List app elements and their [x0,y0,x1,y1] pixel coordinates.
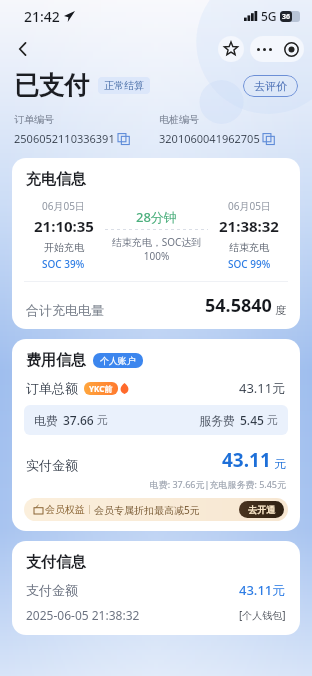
staticText: 服务费 [199,413,235,428]
staticText: 54.5840 [205,293,272,318]
staticText: 支付金额 [26,582,78,598]
staticText: 21:42 [24,7,60,26]
staticText: SOC 99% [228,257,271,271]
staticText: [个人钱包] [239,608,286,622]
button[interactable]: Record [278,36,304,62]
staticText: 43.11元 [239,581,286,599]
staticText: 个人账户 [100,355,136,366]
staticText: 实付金额 [26,457,78,473]
staticText: 43.11元 [239,379,286,397]
button[interactable]: Copy [263,133,275,145]
staticText: 5.45 [240,412,264,428]
staticText: 费用信息 [26,351,86,370]
staticText: 充电信息 [26,170,86,189]
button[interactable]: 去评价 [243,75,298,97]
staticText: 5G [261,8,277,24]
staticText: 电费 [34,413,58,428]
staticText: 结束充电 [229,241,269,254]
staticText: 36 [282,12,291,22]
staticText: 06月05日 [42,199,85,213]
staticText: 43.11 [222,447,271,473]
button[interactable]: Copy [118,133,130,145]
staticText: 订单总额 [26,380,78,396]
button[interactable]: Back [8,34,38,64]
staticText: 订单编号 [14,113,54,126]
button[interactable]: More options [250,36,278,62]
staticText: 2506052110336391 [14,131,115,146]
staticText: 电费: 37.66元|充电服务费: 5.45元 [12,478,286,490]
staticText: SOC 39% [42,257,85,271]
staticText: 支付信息 [26,553,86,572]
staticText: 开始充电 [44,241,84,254]
staticText: YKC前 [89,383,113,394]
staticText: 会员权益 [45,503,85,516]
staticText: 元 [274,456,286,471]
staticText: 正常结算 [104,79,144,92]
staticText: 已支付 [14,70,89,101]
staticText: 28分钟 [136,208,177,226]
staticText: 去开通 [248,504,275,515]
staticText: 合计充电电量 [26,302,104,318]
staticText: 21:10:35 [34,216,94,236]
staticText: 电桩编号 [159,113,199,126]
staticText: 元 [97,413,108,427]
button[interactable]: 会员权益 [24,498,288,521]
staticText: 37.66 [63,412,94,428]
staticText: 21:38:32 [219,216,279,236]
staticText: 度 [275,303,286,317]
staticText: 会员专属折扣最高减5元 [94,503,200,517]
staticText: 元 [267,413,278,427]
staticText: 去评价 [254,79,287,93]
button[interactable]: Favorite [218,36,244,62]
staticText: 结束充电，SOC达到 100% [105,235,208,263]
staticText: 2025-06-05 21:38:32 [26,607,140,623]
staticText: 06月05日 [228,199,271,213]
staticText: 3201060041962705 [159,131,260,146]
